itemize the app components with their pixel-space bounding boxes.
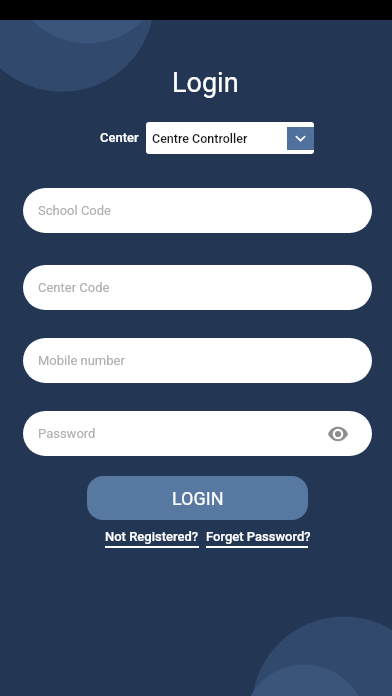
staticText: Login — [172, 67, 239, 99]
button[interactable]: Centre Controller — [146, 122, 314, 154]
staticText: Mobile number — [38, 353, 125, 368]
staticText: Center — [100, 130, 139, 145]
staticText: Forget Password? — [206, 529, 310, 544]
staticText: Center Code — [38, 280, 110, 295]
staticText: LOGIN — [172, 488, 224, 509]
staticText: Password — [38, 426, 96, 441]
button[interactable]: LOGIN — [87, 476, 308, 520]
button[interactable]: Mobile number — [23, 338, 372, 383]
button[interactable]: Center Code — [23, 265, 372, 310]
staticText: Not Registered? — [105, 529, 199, 544]
button[interactable]: Not Registered? — [105, 529, 201, 550]
staticText: Centre Controller — [152, 131, 248, 146]
button[interactable]: Show password — [326, 422, 350, 446]
button[interactable]: Forget Password? — [206, 529, 310, 550]
other: Open centre list — [287, 127, 314, 150]
staticText: School Code — [38, 203, 111, 218]
button[interactable]: School Code — [23, 188, 372, 233]
button[interactable]: Password — [23, 411, 372, 456]
